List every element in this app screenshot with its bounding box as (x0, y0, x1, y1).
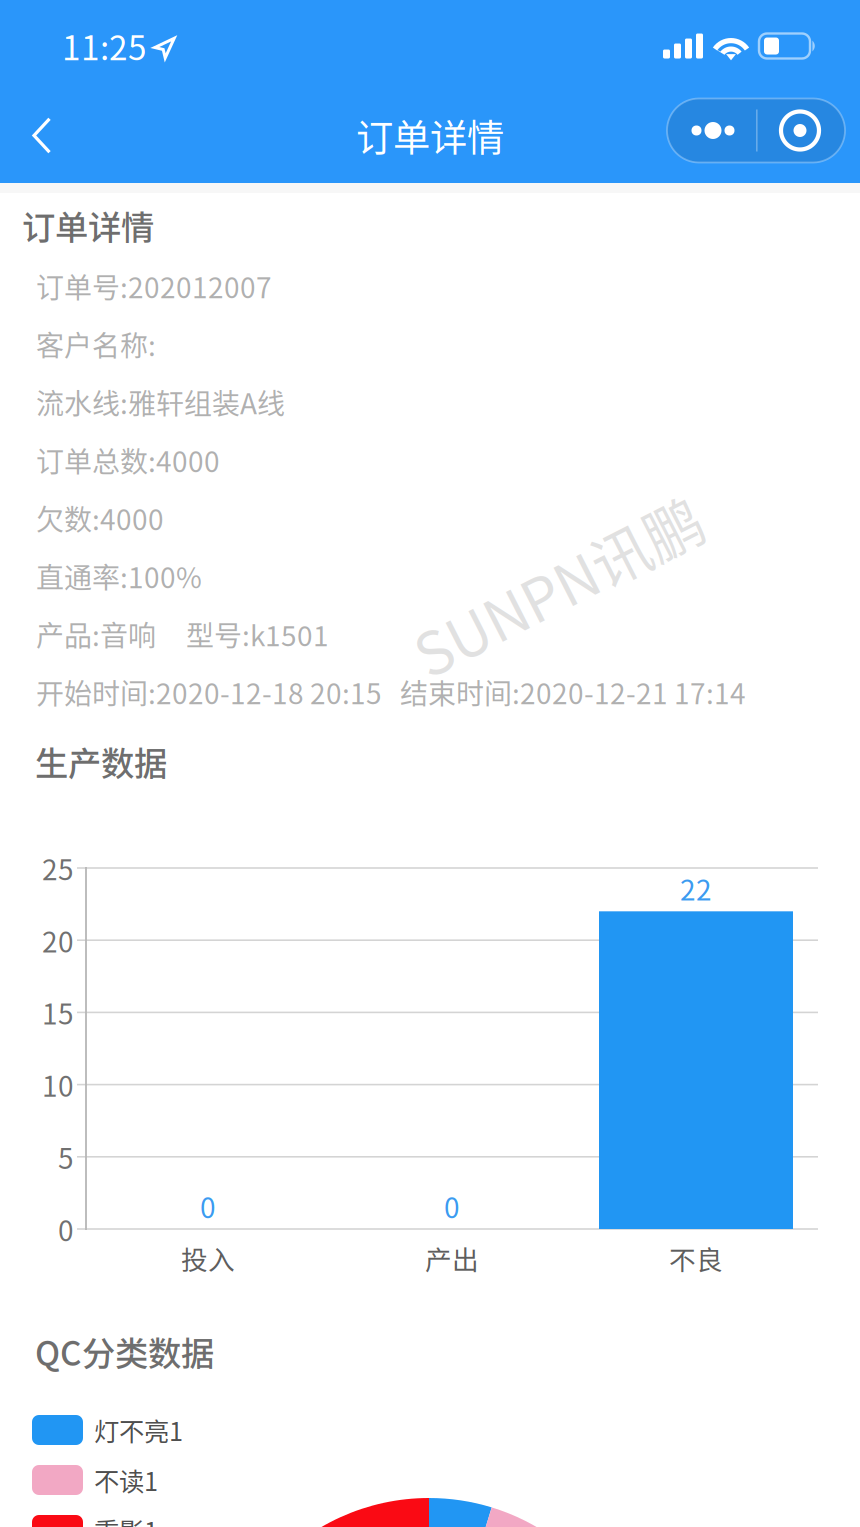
staticText: 22 (680, 868, 712, 908)
staticText: 产品:音响 型号:k1501 (36, 614, 329, 654)
staticText: 不读1 (94, 1462, 158, 1498)
staticText: 直通率:100% (36, 556, 202, 596)
staticText: 20 (42, 920, 74, 960)
staticText: 25 (42, 848, 74, 888)
staticText: 流水线:雅轩组装A线 (36, 382, 285, 422)
staticText: 生产数据 (35, 737, 167, 785)
staticText: QC分类数据 (35, 1327, 214, 1375)
staticText: 订单详情 (356, 108, 504, 163)
staticText: 10 (42, 1064, 74, 1105)
staticText: 开始时间:2020-12-18 20:15 结束时间:2020-12-21 17… (36, 672, 746, 712)
staticText: 订单号:202012007 (36, 266, 272, 306)
button[interactable]: 更多 (667, 98, 845, 162)
staticText: 订单总数:4000 (36, 440, 220, 480)
staticText: 投入 (181, 1239, 235, 1277)
staticText: 15 (42, 992, 74, 1033)
staticText: SUNPN讯鹏 (400, 542, 716, 627)
staticText: 0 (200, 1186, 216, 1226)
staticText: 不良 (669, 1239, 723, 1277)
staticText: 灯不亮1 (94, 1412, 183, 1448)
staticText: 产出 (425, 1239, 479, 1277)
staticText: 欠数:4000 (36, 498, 164, 538)
staticText: 11:25 (62, 21, 147, 70)
staticText: 0 (58, 1209, 74, 1249)
button[interactable]: 返回 (6, 88, 78, 182)
staticText: 重影1 (94, 1512, 158, 1527)
staticText: 客户名称: (36, 324, 156, 364)
staticText: 5 (58, 1136, 74, 1177)
staticText: 订单详情 (22, 201, 154, 249)
staticText: 0 (444, 1186, 460, 1226)
